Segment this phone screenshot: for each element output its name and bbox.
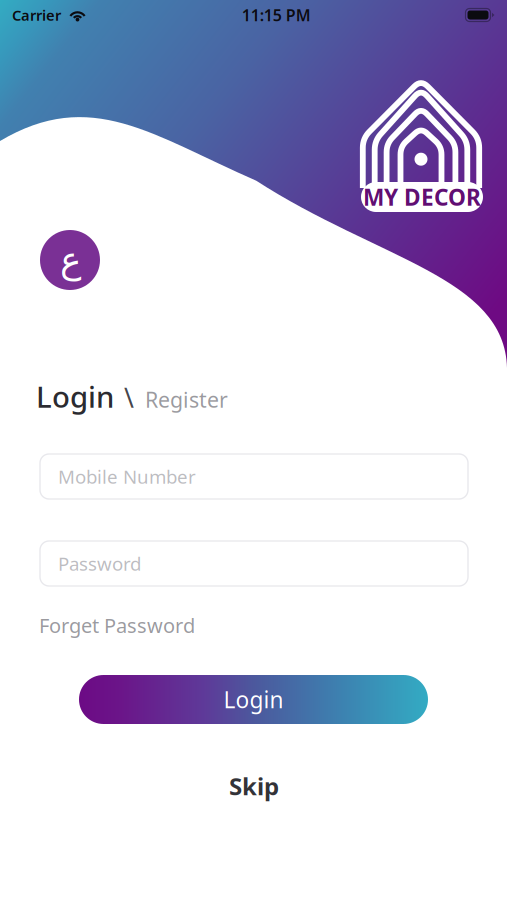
staticText: Carrier	[12, 5, 61, 25]
staticText: Login	[223, 684, 283, 714]
staticText: Skip	[229, 770, 279, 802]
button[interactable]: Password	[40, 541, 468, 586]
button[interactable]: Mobile Number	[40, 454, 468, 499]
button[interactable]: Login	[79, 675, 428, 724]
button[interactable]: Skip	[194, 771, 314, 801]
staticText: Register	[145, 385, 228, 414]
button[interactable]: Forget Password	[39, 612, 195, 639]
button[interactable]: Register	[145, 385, 228, 414]
staticText: Mobile Number	[58, 464, 196, 489]
staticText: Password	[58, 551, 141, 576]
staticText: ع	[59, 240, 80, 280]
button[interactable]: Login	[36, 377, 114, 416]
staticText: 11:15 PM	[242, 4, 311, 26]
staticText: Forget Password	[39, 612, 195, 639]
staticText: Login	[36, 377, 114, 416]
staticText: \	[124, 380, 134, 415]
staticText: MY DECOR	[363, 182, 481, 212]
button[interactable]: Switch language to Arabic	[40, 230, 100, 290]
